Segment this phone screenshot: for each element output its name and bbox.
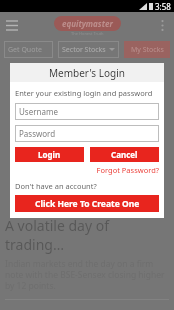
staticText: Don't have an account? — [15, 181, 97, 191]
button[interactable]: More options — [153, 16, 171, 34]
staticText: The Honest Truth — [71, 31, 104, 36]
staticText: equitymaster — [62, 18, 113, 29]
button[interactable]: Forgot Password? — [96, 165, 159, 175]
staticText: 3:58 — [155, 1, 171, 12]
staticText: Enter your existing login and password — [15, 88, 153, 98]
button[interactable]: My Stocks — [124, 41, 170, 58]
staticText: A volatile day of trading… — [5, 216, 169, 254]
button[interactable]: Password — [15, 125, 159, 142]
staticText: Click Here To Create One — [35, 198, 140, 210]
staticText: Login — [38, 149, 61, 160]
button[interactable]: Login — [15, 147, 84, 162]
staticText: Get Quote — [8, 45, 42, 55]
staticText: My Stocks — [131, 45, 164, 55]
button[interactable]: Cancel — [90, 147, 159, 162]
staticText: Password — [19, 128, 56, 139]
staticText: Sector Stocks — [62, 45, 106, 55]
button[interactable]: Menu — [2, 15, 22, 35]
button[interactable]: Get Quote — [4, 41, 53, 58]
staticText: Cancel — [111, 149, 138, 160]
button[interactable]: equitymaster — [62, 18, 113, 29]
button[interactable]: Username — [15, 103, 159, 120]
button[interactable]: Click Here To Create One — [15, 195, 159, 212]
staticText: Member's Login — [49, 66, 125, 80]
button[interactable]: Sector Stocks — [58, 41, 119, 58]
staticText: Username — [19, 106, 58, 117]
